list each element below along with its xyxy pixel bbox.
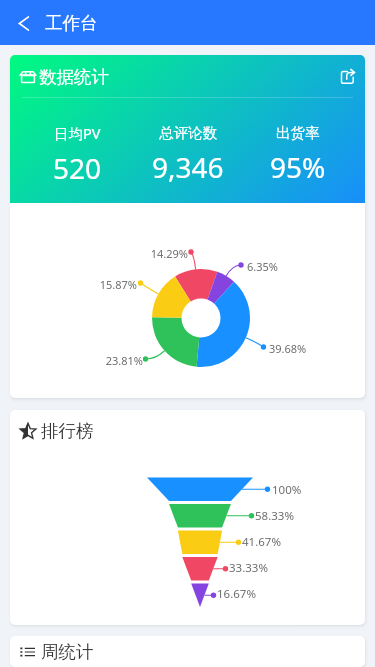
staticText: 95% <box>270 148 326 186</box>
staticText: 39.68% <box>269 341 315 356</box>
staticText: 9,346 <box>152 148 224 186</box>
staticText: 数据统计 <box>39 66 109 88</box>
staticText: 总评论数 <box>159 124 217 142</box>
staticText: 41.67% <box>242 534 281 550</box>
staticText: 23.81% <box>97 353 143 368</box>
staticText: 日均PV <box>54 123 101 143</box>
button[interactable]: Share <box>336 66 358 88</box>
staticText: 100% <box>272 482 302 498</box>
staticText: 工作台 <box>45 12 98 34</box>
staticText: 16.67% <box>217 586 256 602</box>
staticText: 排行榜 <box>41 420 94 442</box>
staticText: 33.33% <box>229 560 268 576</box>
staticText: 周统计 <box>41 641 94 663</box>
staticText: 58.33% <box>255 508 294 524</box>
staticText: 出货率 <box>276 124 320 142</box>
staticText: 520 <box>53 149 102 187</box>
staticText: 15.87% <box>91 277 137 292</box>
button[interactable]: Back <box>0 7 112 39</box>
staticText: 14.29% <box>142 246 188 261</box>
staticText: 6.35% <box>247 259 293 274</box>
